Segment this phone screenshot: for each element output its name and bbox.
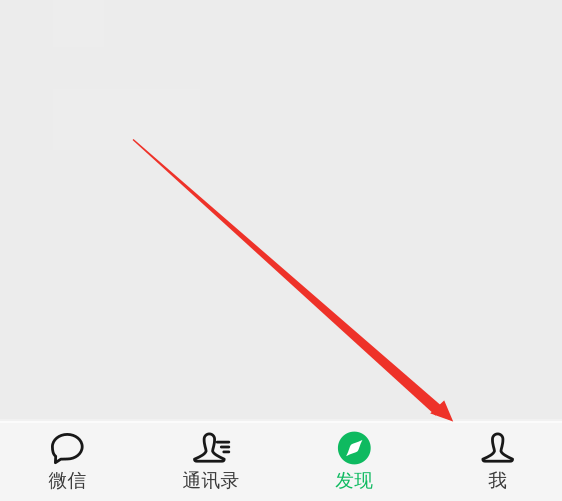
staticText: 我: [488, 469, 507, 492]
button[interactable]: 我: [426, 423, 562, 501]
button[interactable]: 通讯录: [139, 423, 283, 501]
staticText: 通讯录: [182, 469, 239, 492]
staticText: 发现: [335, 469, 373, 492]
button[interactable]: 微信: [0, 423, 139, 501]
button[interactable]: 发现: [283, 423, 426, 501]
staticText: 微信: [48, 469, 86, 492]
